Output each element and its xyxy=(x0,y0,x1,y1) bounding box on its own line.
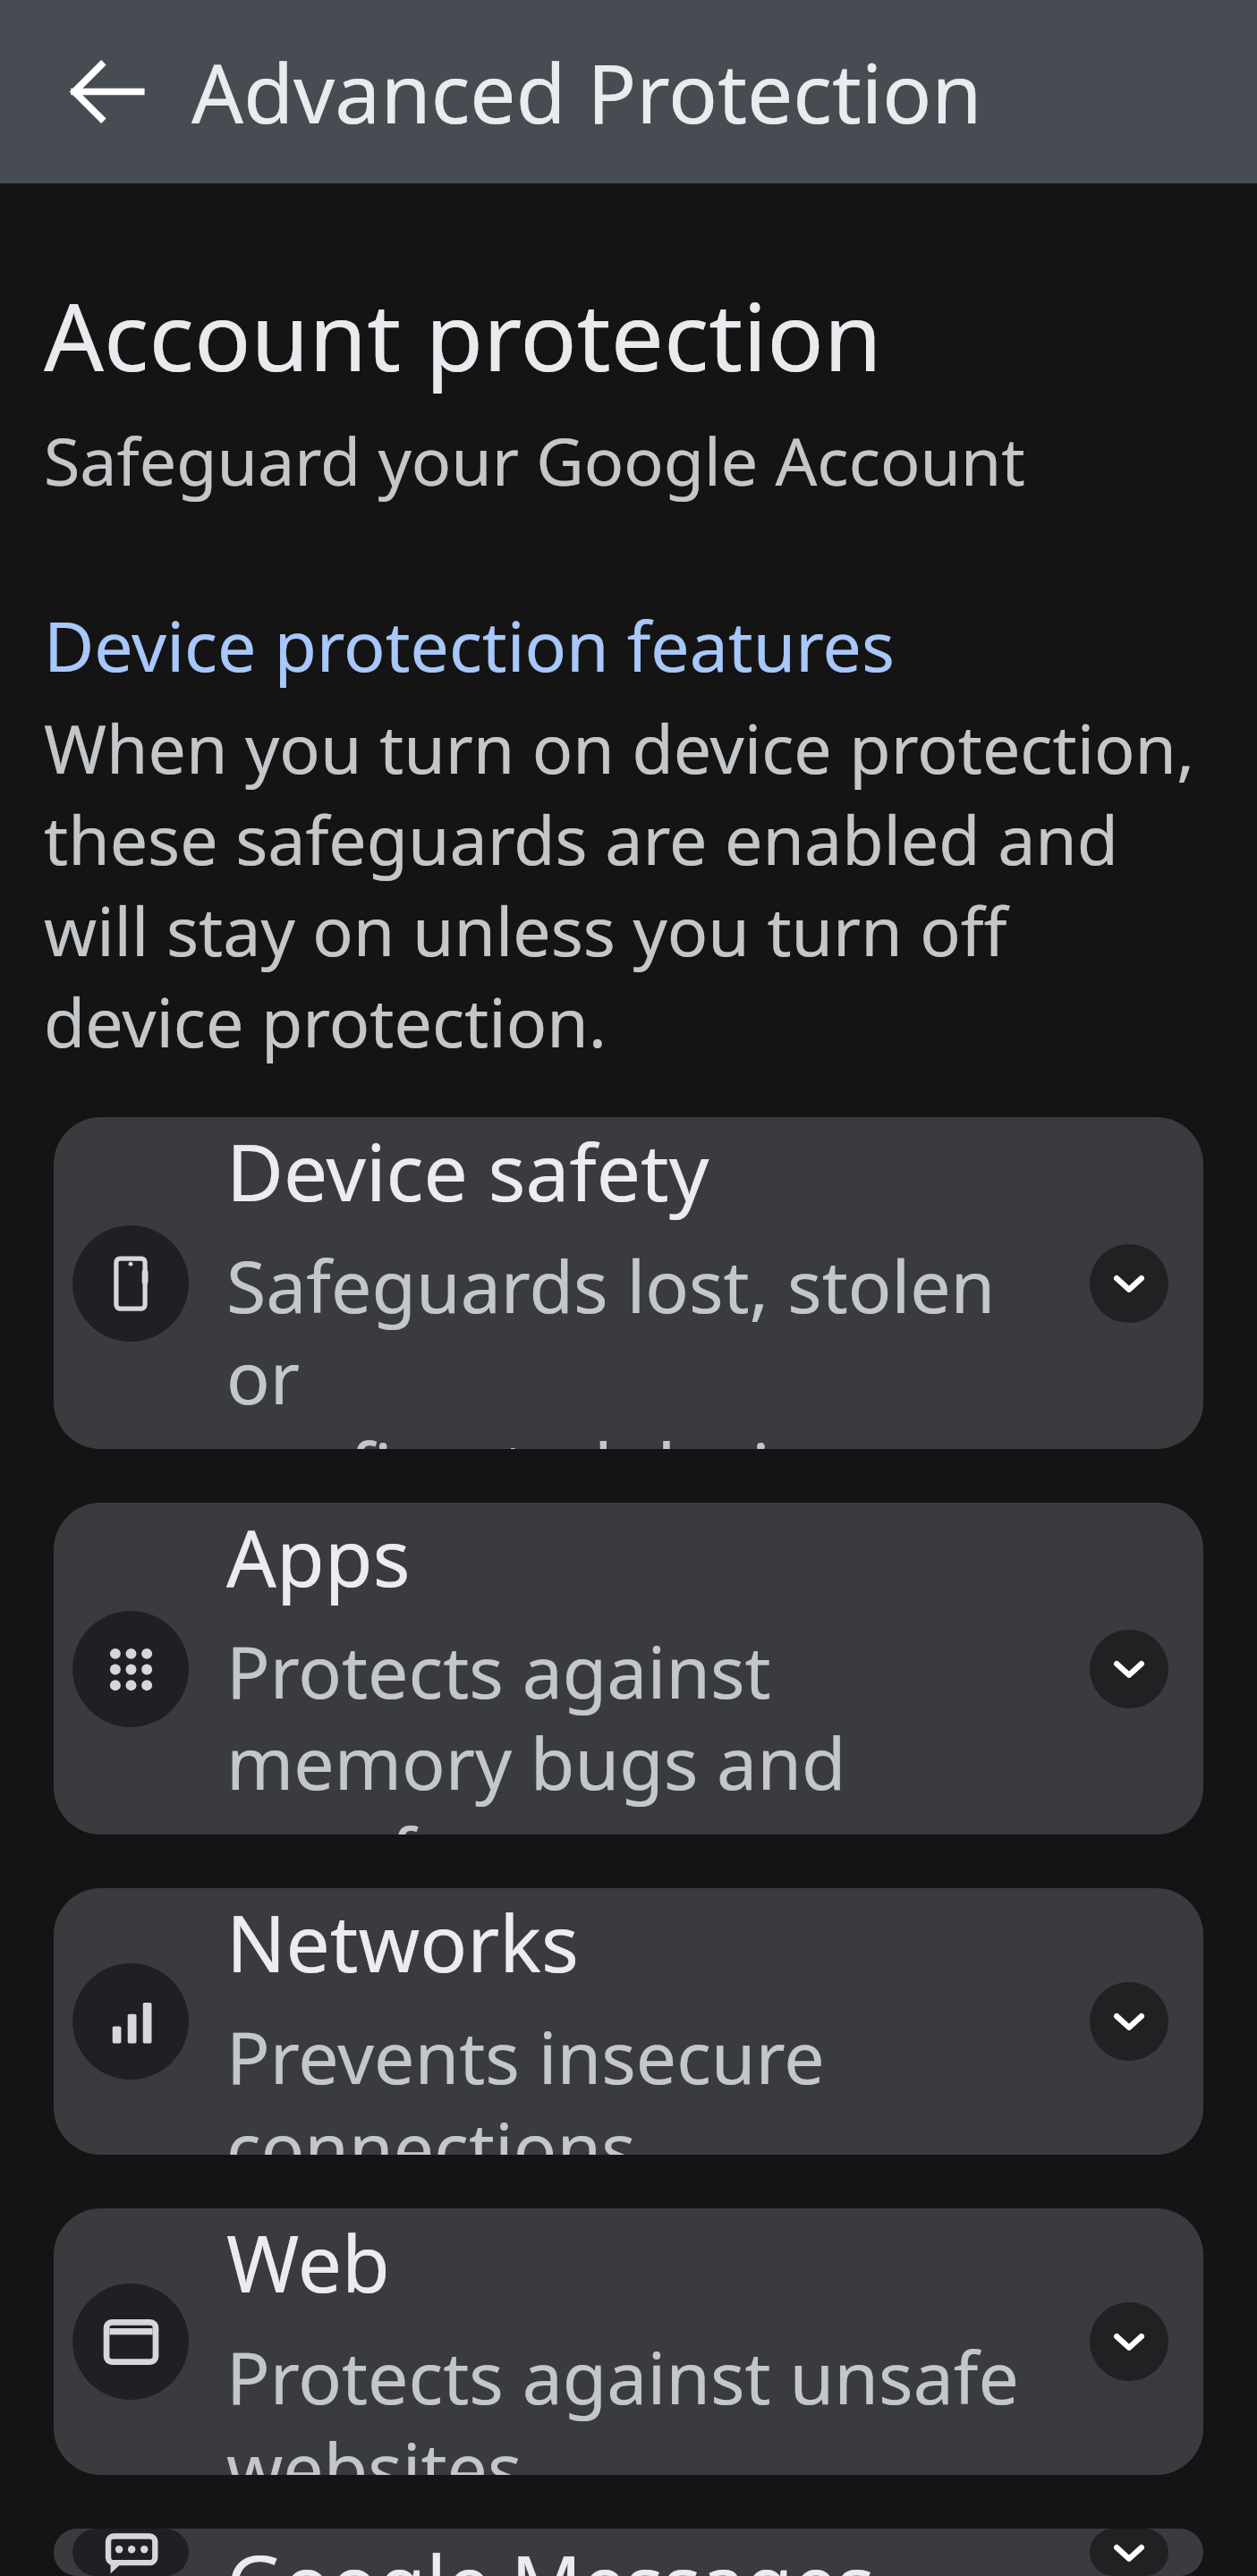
button[interactable]: Google Messages xyxy=(54,2529,1203,2576)
button[interactable]: Device safety xyxy=(54,1117,1203,1449)
staticText: When you turn on device protection, thes… xyxy=(44,702,1201,1067)
staticText: Safeguards lost, stolen or confiscated d… xyxy=(226,1236,1071,1449)
staticText: Protects against memory bugs and unsafe … xyxy=(226,1622,1071,1835)
staticText: Web xyxy=(226,2208,390,2315)
button[interactable]: Expand Apps xyxy=(1090,1630,1168,1708)
staticText: Apps xyxy=(226,1503,411,1609)
button[interactable]: Web xyxy=(54,2208,1203,2475)
button[interactable]: Networks xyxy=(54,1888,1203,2155)
staticText: Safeguard your Google Account xyxy=(44,415,1025,504)
button[interactable]: Back xyxy=(41,26,173,157)
button[interactable]: Expand Web xyxy=(1090,2302,1168,2381)
staticText: Device safety xyxy=(226,1117,709,1224)
button[interactable]: Device protection features xyxy=(44,598,895,692)
button[interactable]: Expand Device safety xyxy=(1090,1244,1168,1323)
staticText: Networks xyxy=(226,1888,579,1995)
button[interactable]: Expand Networks xyxy=(1090,1982,1168,2061)
button[interactable]: Apps xyxy=(54,1503,1203,1835)
button[interactable]: Expand Google Messages xyxy=(1090,2529,1168,2576)
staticText: Account protection xyxy=(44,271,882,399)
staticText: Prevents insecure connections xyxy=(226,2007,1071,2155)
staticText: Google Messages xyxy=(226,2529,875,2576)
staticText: Protects against unsafe websites xyxy=(226,2327,1071,2475)
staticText: Advanced Protection xyxy=(191,37,982,148)
